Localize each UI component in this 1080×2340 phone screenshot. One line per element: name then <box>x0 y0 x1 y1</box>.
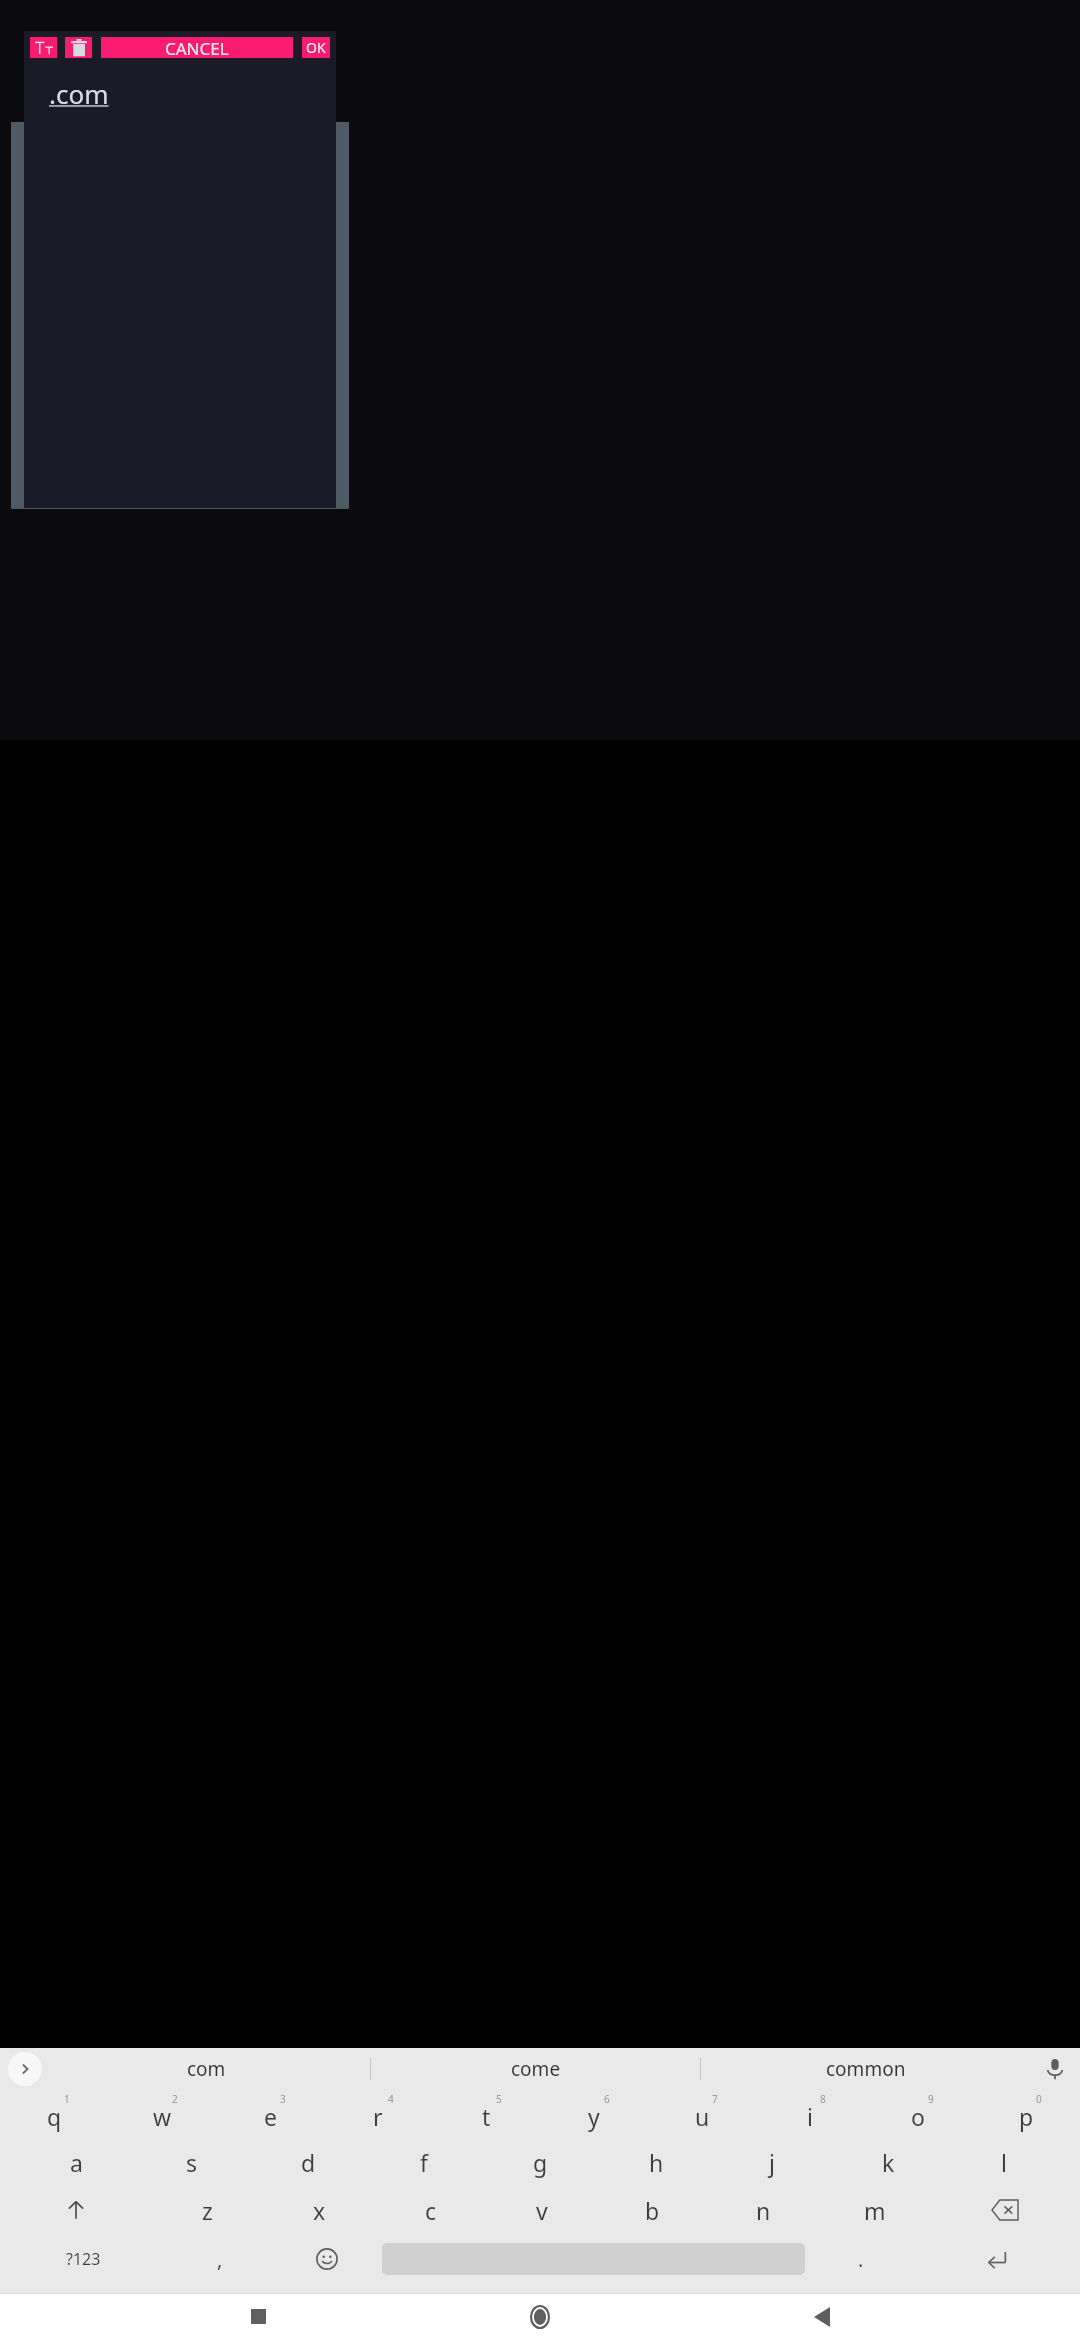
button[interactable]: h <box>598 2138 714 2186</box>
staticText: ?123 <box>66 2248 101 2270</box>
staticText: t <box>482 2101 491 2132</box>
button[interactable]: Enter <box>914 2234 1080 2284</box>
button[interactable]: m <box>819 2186 930 2234</box>
button[interactable]: 3 <box>216 2090 324 2138</box>
staticText: y <box>588 2101 600 2132</box>
button[interactable]: j <box>714 2138 830 2186</box>
staticText: , <box>217 2246 223 2273</box>
staticText: e <box>264 2101 277 2132</box>
staticText: .com <box>49 76 109 111</box>
button[interactable]: , <box>166 2234 273 2284</box>
button[interactable]: n <box>708 2186 819 2234</box>
staticText: f <box>420 2147 428 2178</box>
staticText: d <box>301 2147 316 2178</box>
button[interactable]: x <box>263 2186 375 2234</box>
staticText: 7 <box>712 2092 718 2106</box>
button[interactable]: l <box>946 2138 1062 2186</box>
button[interactable]: b <box>597 2186 708 2234</box>
button[interactable]: Text size <box>30 37 57 58</box>
staticText: 0 <box>1036 2092 1042 2106</box>
staticText: h <box>649 2147 664 2178</box>
button[interactable]: 7 <box>648 2090 756 2138</box>
button[interactable]: ?123 <box>0 2234 166 2284</box>
staticText: n <box>756 2195 771 2226</box>
staticText: u <box>695 2101 710 2132</box>
staticText: 1 <box>64 2092 70 2106</box>
button[interactable]: 1 <box>0 2090 108 2138</box>
staticText: o <box>911 2101 925 2132</box>
staticText: 9 <box>928 2092 934 2106</box>
button[interactable]: OK <box>302 37 330 58</box>
staticText: j <box>769 2147 775 2178</box>
button[interactable]: 5 <box>432 2090 540 2138</box>
button[interactable]: 2 <box>108 2090 216 2138</box>
button[interactable]: com <box>42 2048 370 2090</box>
button[interactable]: Recent apps <box>234 2293 282 2340</box>
staticText: m <box>864 2195 886 2226</box>
button[interactable]: Voice input <box>1030 2048 1080 2090</box>
staticText: r <box>373 2101 383 2132</box>
button[interactable]: z <box>151 2186 263 2234</box>
staticText: CANCEL <box>165 37 229 58</box>
staticText: 2 <box>172 2092 178 2106</box>
staticText: 5 <box>496 2092 502 2106</box>
staticText: c <box>425 2195 437 2226</box>
button[interactable]: 9 <box>864 2090 972 2138</box>
staticText: a <box>70 2147 83 2178</box>
button[interactable]: g <box>482 2138 598 2186</box>
button[interactable]: Back <box>798 2293 846 2340</box>
button[interactable]: More suggestions <box>8 2052 42 2086</box>
button[interactable]: Home <box>516 2293 564 2340</box>
staticText: i <box>807 2101 813 2132</box>
staticText: b <box>645 2195 660 2226</box>
staticText: com <box>187 2056 226 2082</box>
button[interactable]: .com <box>24 58 336 508</box>
staticText: 3 <box>280 2092 286 2106</box>
staticText: p <box>1019 2101 1034 2132</box>
staticText: OK <box>306 38 326 57</box>
button[interactable]: v <box>486 2186 597 2234</box>
staticText: s <box>186 2147 198 2178</box>
staticText: x <box>313 2195 326 2226</box>
button[interactable]: Emoji <box>273 2234 380 2284</box>
staticText: 6 <box>604 2092 610 2106</box>
staticText: 4 <box>388 2092 394 2106</box>
button[interactable]: 6 <box>540 2090 648 2138</box>
button[interactable]: come <box>371 2048 700 2090</box>
button[interactable]: Shift <box>0 2186 151 2234</box>
button[interactable]: s <box>134 2138 250 2186</box>
button[interactable]: Delete <box>65 37 92 58</box>
button[interactable]: c <box>375 2186 486 2234</box>
button[interactable]: a <box>18 2138 134 2186</box>
staticText: k <box>882 2147 895 2178</box>
button[interactable]: CANCEL <box>101 37 293 58</box>
staticText: common <box>826 2056 906 2082</box>
staticText: q <box>47 2101 62 2132</box>
button[interactable]: k <box>830 2138 946 2186</box>
staticText: z <box>202 2195 213 2226</box>
button[interactable]: 4 <box>324 2090 432 2138</box>
button[interactable]: f <box>366 2138 482 2186</box>
staticText: come <box>511 2056 561 2082</box>
button[interactable]: d <box>250 2138 366 2186</box>
staticText: l <box>1001 2147 1007 2178</box>
staticText: v <box>536 2195 548 2226</box>
button[interactable]: Backspace <box>930 2186 1080 2234</box>
staticText: g <box>533 2147 548 2178</box>
button[interactable]: common <box>701 2048 1030 2090</box>
staticText: w <box>153 2101 172 2132</box>
staticText: . <box>858 2246 864 2273</box>
button[interactable]: 8 <box>756 2090 864 2138</box>
button[interactable]: 0 <box>972 2090 1080 2138</box>
staticText: 8 <box>820 2092 826 2106</box>
button[interactable]: . <box>807 2234 914 2284</box>
